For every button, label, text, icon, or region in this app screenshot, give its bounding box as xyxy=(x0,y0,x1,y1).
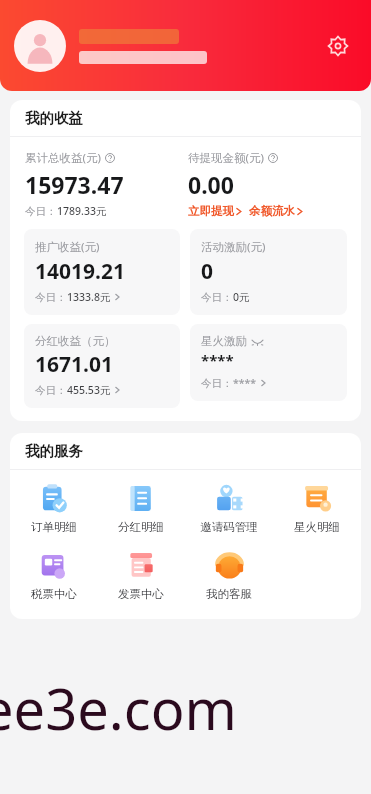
button[interactable]: 星火明细 xyxy=(273,479,361,538)
button[interactable]: 星火激励 xyxy=(190,324,347,401)
staticText: 455.53元 xyxy=(67,383,111,397)
staticText: 1671.01 xyxy=(35,350,113,379)
button[interactable]: 邀请码管理 xyxy=(185,479,273,538)
staticText: 0.00 xyxy=(188,169,234,200)
staticText: 1333.8元 xyxy=(67,290,111,304)
button[interactable]: 我的客服 xyxy=(185,546,273,605)
button[interactable]: Profile avatar xyxy=(14,20,66,72)
staticText: 今日： xyxy=(35,291,67,304)
staticText: 订单明细 xyxy=(31,520,77,534)
staticText: 0元 xyxy=(233,290,250,304)
staticText: 邀请码管理 xyxy=(200,520,258,534)
staticText: 推广收益(元) xyxy=(35,239,100,255)
staticText: 活动激励(元) xyxy=(201,239,266,255)
button[interactable]: 分红明细 xyxy=(97,479,185,538)
staticText: 今日： xyxy=(25,205,57,218)
staticText: 星火激励 xyxy=(201,334,247,348)
staticText: ee3e.com xyxy=(0,670,237,746)
staticText: 余额流水 xyxy=(249,204,295,218)
staticText: 我的服务 xyxy=(25,442,83,460)
staticText: 今日： xyxy=(35,384,67,397)
button[interactable]: 立即提现 xyxy=(188,204,242,218)
button[interactable]: 累计总收益(元) xyxy=(25,150,188,218)
staticText: 我的客服 xyxy=(206,587,252,601)
button[interactable]: 发票中心 xyxy=(97,546,185,605)
staticText: 立即提现 xyxy=(188,204,234,218)
staticText: 税票中心 xyxy=(31,587,77,601)
staticText: **** xyxy=(233,376,257,390)
staticText: 待提现金额(元) xyxy=(188,150,264,166)
staticText: 14019.21 xyxy=(35,257,125,286)
button[interactable]: 税票中心 xyxy=(10,546,97,605)
button[interactable]: 活动激励(元) xyxy=(190,229,347,315)
staticText: 今日： xyxy=(201,291,233,304)
staticText: 累计总收益(元) xyxy=(25,150,101,166)
staticText: 0 xyxy=(201,257,214,286)
staticText: 我的收益 xyxy=(25,109,83,127)
staticText: 星火明细 xyxy=(294,520,340,534)
button[interactable]: 余额流水 xyxy=(249,204,303,218)
staticText: 分红明细 xyxy=(118,520,164,534)
button[interactable]: 待提现金额(元) xyxy=(188,150,351,218)
staticText: 今日： xyxy=(201,377,233,390)
staticText: **** xyxy=(201,350,234,370)
staticText: 15973.47 xyxy=(25,169,124,200)
staticText: 分红收益（元） xyxy=(35,334,116,348)
button[interactable]: 订单明细 xyxy=(10,479,97,538)
button[interactable]: Settings xyxy=(321,29,355,63)
button[interactable]: 推广收益(元) xyxy=(24,229,180,315)
staticText: 1789.33元 xyxy=(57,204,107,218)
staticText: 发票中心 xyxy=(118,587,164,601)
button[interactable]: 分红收益（元） xyxy=(24,324,180,408)
